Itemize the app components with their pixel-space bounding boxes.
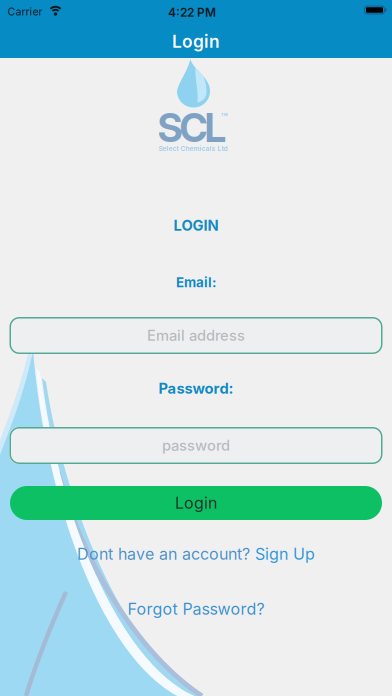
staticText: Email: [176, 275, 216, 290]
staticText: Login [175, 494, 217, 512]
staticText: Password: [158, 380, 233, 397]
button[interactable]: Email address [9, 317, 382, 354]
staticText: password [162, 437, 230, 454]
button[interactable]: Password [9, 427, 382, 464]
button[interactable]: Login [10, 486, 382, 520]
button[interactable]: Forgot Password? [127, 600, 264, 618]
staticText: Login [172, 31, 220, 52]
staticText: Dont have an account? [77, 545, 255, 563]
staticText: Carrier [7, 5, 42, 18]
staticText: TM [221, 112, 228, 117]
button[interactable]: Dont have an account? [77, 545, 315, 563]
staticText: 4:22 PM [168, 5, 216, 20]
staticText: Sign Up [255, 545, 315, 563]
staticText: Forgot Password? [127, 600, 264, 618]
staticText: Email address [147, 327, 245, 344]
staticText: SCL [157, 105, 226, 151]
staticText: LOGIN [173, 217, 218, 234]
staticText: Select Chemicals Ltd [158, 145, 227, 152]
